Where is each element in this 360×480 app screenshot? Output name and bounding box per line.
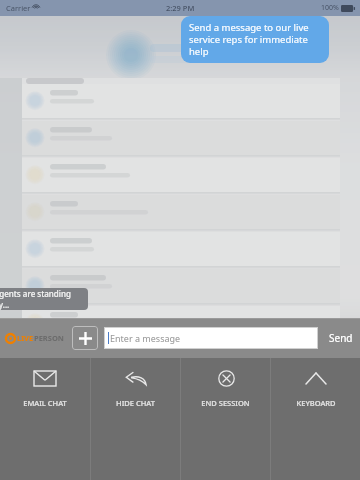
staticText: HIDE CHAT bbox=[116, 398, 155, 408]
button[interactable]: LIVE bbox=[4, 333, 66, 343]
staticText: END SESSION bbox=[201, 398, 250, 408]
button[interactable]: Enter a message bbox=[104, 327, 318, 349]
button[interactable]: HIDE CHAT bbox=[91, 358, 180, 480]
button[interactable]: END SESSION bbox=[181, 358, 270, 480]
button[interactable]: Send bbox=[326, 327, 356, 349]
staticText: Enter a message bbox=[110, 332, 181, 344]
staticText: 2:29 PM bbox=[166, 3, 195, 13]
button[interactable]: Agents are standing by... bbox=[0, 288, 88, 310]
staticText: 100% bbox=[321, 3, 339, 13]
staticText: KEYBOARD bbox=[296, 398, 336, 408]
staticText: LIVE bbox=[17, 333, 34, 343]
staticText: EMAIL CHAT bbox=[23, 398, 67, 408]
staticText: PERSON bbox=[34, 333, 64, 343]
button[interactable]: Send a message to our live service reps … bbox=[181, 16, 329, 63]
button[interactable]: KEYBOARD bbox=[271, 358, 360, 480]
button[interactable]: EMAIL CHAT bbox=[0, 358, 90, 480]
staticText: Carrier bbox=[6, 3, 31, 13]
staticText: Send bbox=[329, 331, 353, 345]
button[interactable]: Add attachment bbox=[72, 326, 98, 350]
staticText: Agents are standing by... bbox=[0, 288, 88, 310]
staticText: Send a message to our live service reps … bbox=[189, 21, 321, 58]
